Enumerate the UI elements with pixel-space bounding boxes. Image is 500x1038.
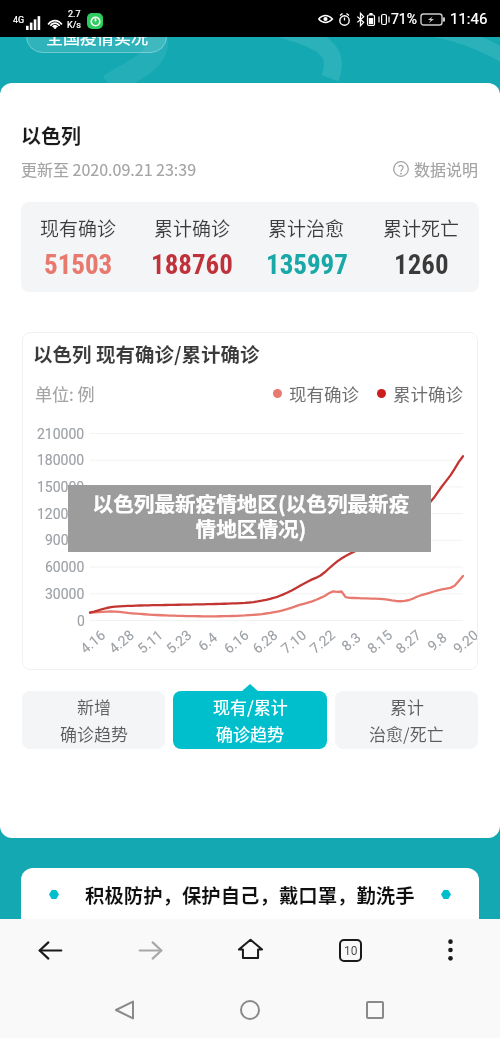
staticText: 现有确诊 [40, 214, 117, 242]
staticText: 确诊趋势 [60, 721, 128, 746]
staticText: 51503 [44, 249, 113, 281]
button[interactable]: 累计治愈 [249, 202, 364, 292]
button[interactable]: 现有/累计 [173, 691, 327, 749]
staticText: 确诊趋势 [216, 721, 284, 746]
staticText: 2.7 [68, 9, 81, 20]
button[interactable]: 全国疫情实况 [26, 20, 167, 53]
button[interactable]: Recents [312, 981, 437, 1038]
staticText: 188760 [151, 249, 233, 281]
staticText: 治愈/死亡 [369, 721, 444, 746]
button[interactable]: 积极防护，保护自己，戴口罩，勤洗手 [21, 868, 479, 919]
staticText: 累计 [390, 694, 424, 719]
staticText: 数据说明 [414, 157, 479, 180]
staticText: 累计确诊 [393, 381, 463, 406]
staticText: 累计确诊 [154, 214, 231, 242]
button[interactable]: 数据说明 [393, 157, 479, 180]
staticText: 以色列 [21, 121, 81, 150]
staticText: 以色列 现有确诊/累计确诊 [33, 339, 260, 367]
button[interactable]: Back [62, 981, 187, 1038]
button[interactable]: 累计确诊 [135, 202, 249, 292]
button[interactable]: 累计 [335, 691, 478, 749]
staticText: 新增 [77, 694, 111, 719]
staticText: 4G [13, 15, 25, 26]
button[interactable]: 现有确诊 [21, 202, 135, 292]
staticText: 累计治愈 [268, 214, 345, 242]
staticText: 135997 [266, 249, 348, 281]
staticText: K/s [67, 20, 82, 31]
button[interactable]: Back [0, 919, 100, 981]
staticText: 现有/累计 [213, 694, 288, 719]
staticText: 累计死亡 [383, 214, 460, 242]
button[interactable]: Tabs [300, 919, 400, 981]
button[interactable]: More options [400, 919, 500, 981]
button[interactable]: Home [200, 919, 300, 981]
staticText: 10 [344, 944, 358, 958]
staticText: 11:46 [450, 10, 488, 28]
staticText: 现有确诊 [289, 381, 359, 406]
staticText: 更新至 2020.09.21 23:39 [21, 157, 197, 180]
staticText: 71% [391, 11, 417, 27]
staticText: 单位: 例 [35, 381, 95, 406]
button[interactable]: Forward [100, 919, 200, 981]
staticText: 1260 [394, 249, 449, 281]
staticText: 全国疫情实况 [46, 24, 148, 49]
button[interactable]: 累计死亡 [364, 202, 479, 292]
button[interactable]: 新增 [22, 691, 165, 749]
staticText: 积极防护，保护自己，戴口罩，勤洗手 [85, 880, 415, 908]
button[interactable]: Home [187, 981, 312, 1038]
